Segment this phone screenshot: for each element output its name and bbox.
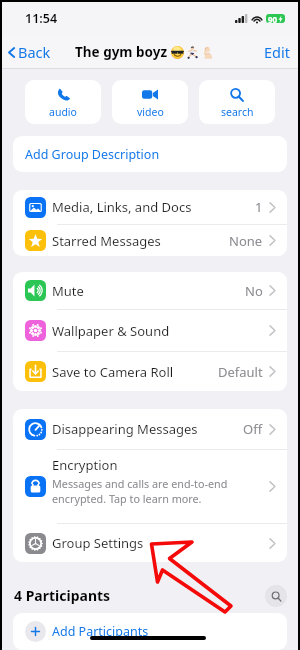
staticText: Messages and calls are end-to-end encryp… [52, 476, 228, 506]
staticText: audio [49, 105, 77, 119]
staticText: Disappearing Messages [52, 420, 198, 438]
button[interactable]: Starred Messages [13, 225, 287, 256]
staticText: search [221, 105, 254, 119]
button[interactable]: Back [2, 38, 57, 66]
button[interactable]: Add Participants [13, 613, 287, 650]
staticText: Group Settings [52, 534, 144, 552]
staticText: No [245, 282, 263, 300]
staticText: Add Group Description [25, 146, 160, 163]
button[interactable]: Media, Links, and Docs [13, 190, 287, 224]
staticText: Wallpaper & Sound [52, 322, 170, 340]
button[interactable]: video [112, 80, 188, 124]
button[interactable]: Mute [13, 272, 287, 309]
staticText: Off [243, 420, 263, 438]
button[interactable]: Group Settings [13, 524, 287, 562]
button[interactable]: Encryption [13, 450, 287, 523]
staticText: None [229, 232, 263, 250]
staticText: Encryption [52, 456, 118, 474]
staticText: Mute [52, 282, 84, 300]
staticText: The gym boyz [75, 43, 168, 61]
button[interactable]: Add Group Description [13, 136, 287, 172]
staticText: 90 [268, 14, 278, 23]
staticText: Save to Camera Roll [52, 363, 174, 381]
staticText: 11:54 [25, 10, 58, 27]
button[interactable]: Disappearing Messages [13, 409, 287, 449]
button[interactable]: search [199, 80, 275, 124]
staticText: 1 [255, 198, 263, 216]
staticText: Back [18, 42, 51, 62]
button[interactable]: Search participants [265, 585, 287, 607]
staticText: Media, Links, and Docs [52, 198, 192, 216]
button[interactable]: Wallpaper & Sound [13, 310, 287, 351]
staticText: Add Participants [52, 623, 149, 640]
staticText: Default [218, 363, 263, 381]
staticText: Starred Messages [52, 232, 161, 250]
staticText: 4 Participants [14, 586, 111, 605]
button[interactable]: Save to Camera Roll [13, 352, 287, 391]
staticText: video [137, 105, 164, 119]
button[interactable]: Edit [256, 38, 298, 66]
button[interactable]: audio [25, 80, 101, 124]
